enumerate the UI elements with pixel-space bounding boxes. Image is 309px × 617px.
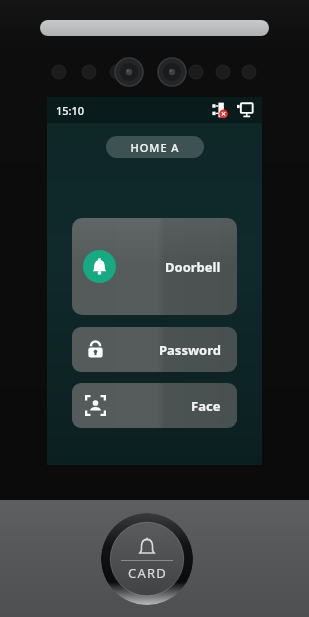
button[interactable]: CARD reader xyxy=(101,513,193,605)
button[interactable]: Network error xyxy=(212,102,228,118)
button[interactable]: Doorbell xyxy=(72,218,237,315)
staticText: HOME A xyxy=(130,140,180,155)
staticText: Face xyxy=(191,397,221,415)
staticText: CARD xyxy=(128,564,167,582)
staticText: 15:10 xyxy=(56,103,85,118)
button[interactable]: HOME A xyxy=(106,136,204,158)
staticText: Doorbell xyxy=(165,258,221,276)
button[interactable]: Face xyxy=(72,383,237,428)
staticText: Password xyxy=(159,341,221,359)
button[interactable]: Password xyxy=(72,327,237,372)
button[interactable]: Monitor connected xyxy=(237,102,253,118)
